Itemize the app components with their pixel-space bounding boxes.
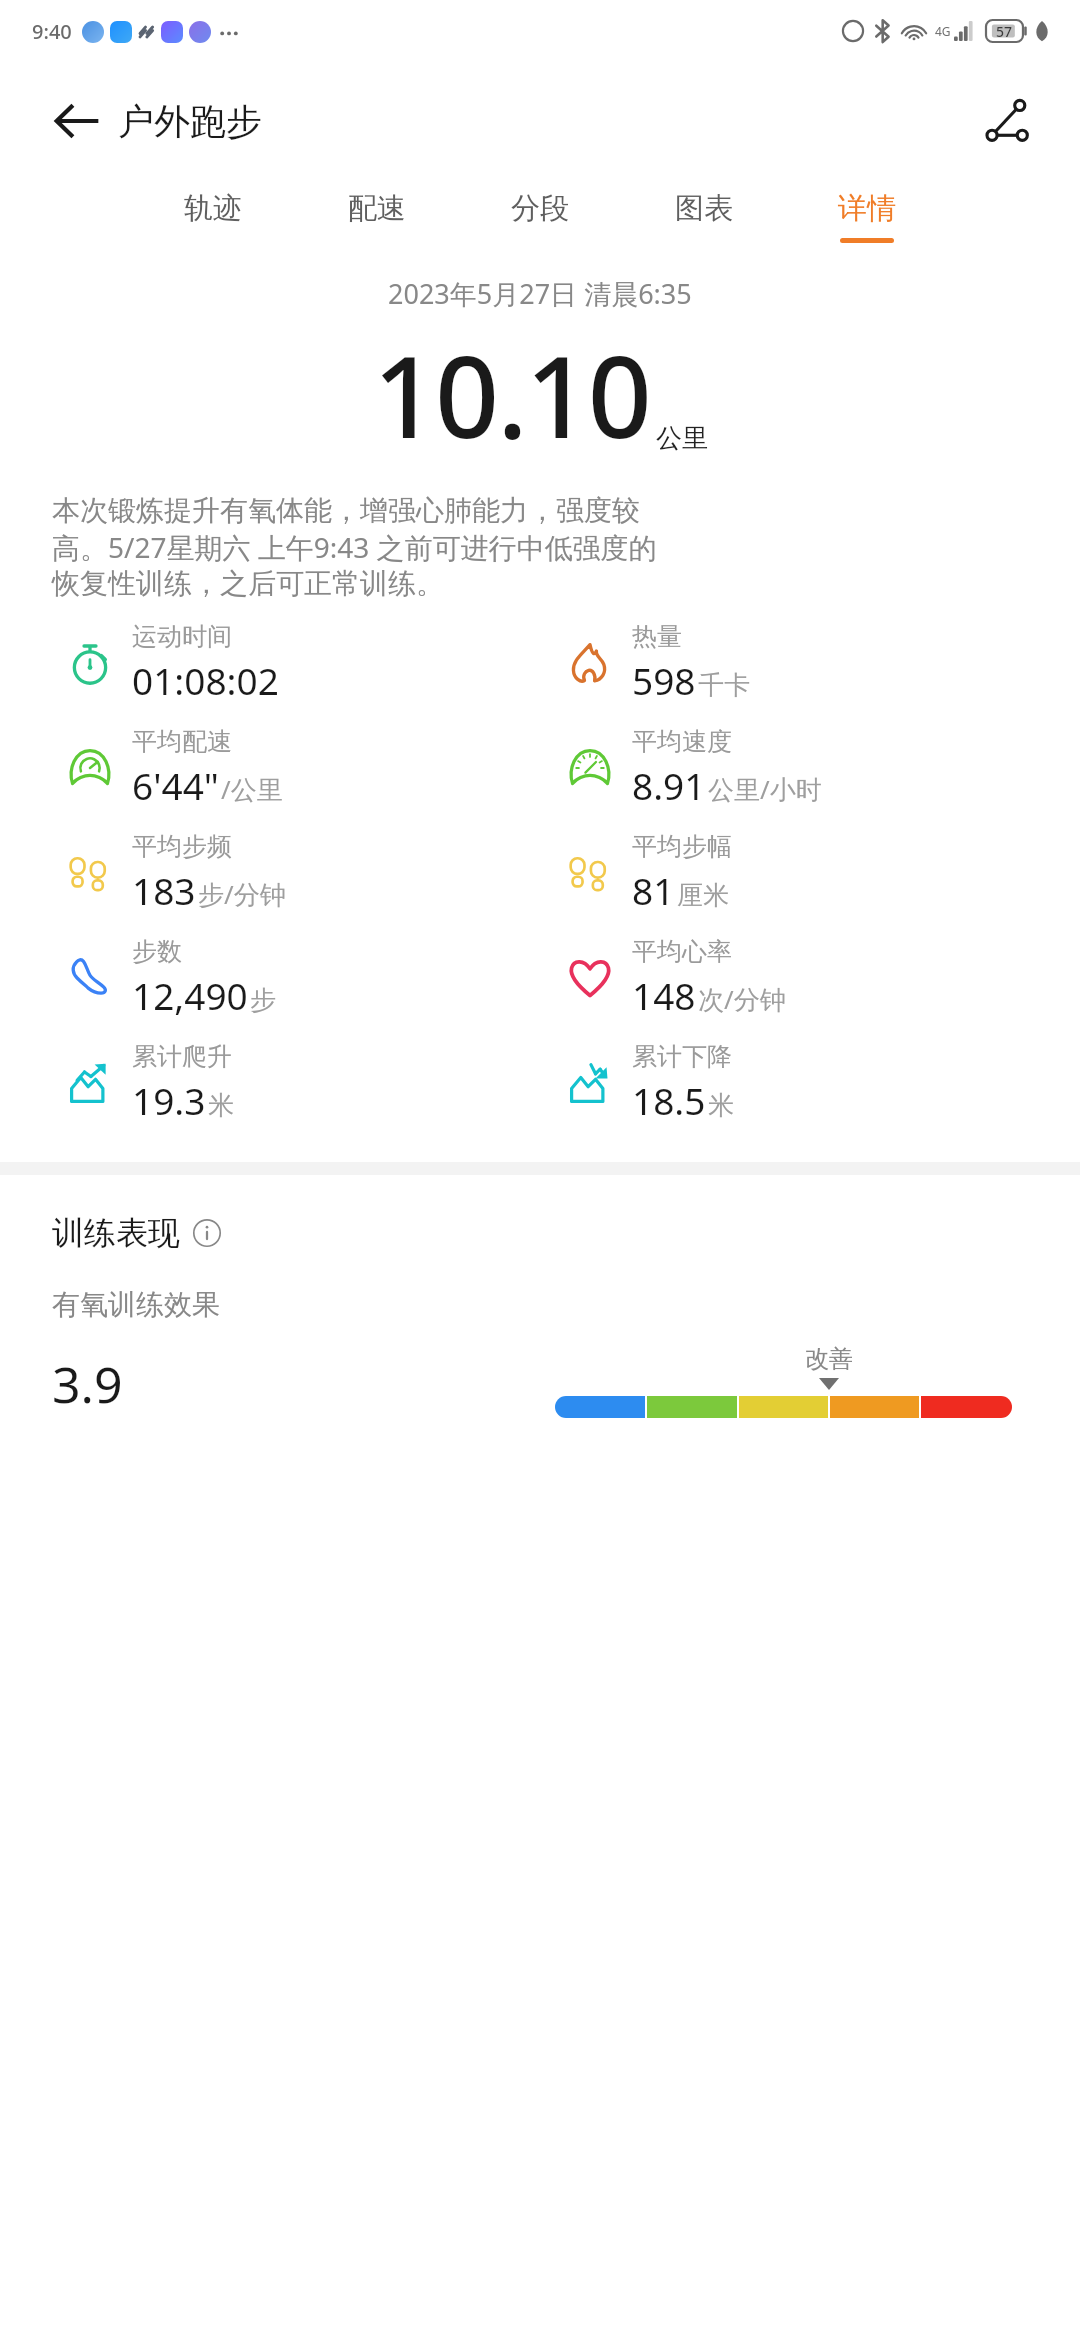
staticText: 6'44" (132, 760, 219, 810)
staticText: 平均配速 (132, 726, 232, 757)
staticText: 次/分钟 (698, 981, 786, 1017)
staticText: 平均步频 (132, 831, 232, 862)
staticText: 本次锻炼提升有氧体能，增强心肺能力，强度较 (52, 493, 640, 528)
staticText: 恢复性训练，之后可正常训练。 (52, 566, 444, 601)
staticText: 米 (708, 1089, 734, 1122)
staticText: 8.91 (632, 760, 706, 810)
button[interactable]: 运动时间 (62, 621, 540, 705)
staticText: 598 (632, 655, 696, 705)
staticText: 平均步幅 (632, 831, 732, 862)
staticText: 81 (632, 865, 675, 915)
staticText: 步/分钟 (198, 876, 286, 912)
staticText: 热量 (632, 621, 682, 652)
staticText: 57 (996, 22, 1013, 41)
button[interactable]: 轨迹 (180, 180, 246, 253)
staticText: 训练表现 (52, 1213, 180, 1253)
staticText: 图表 (675, 190, 733, 227)
button[interactable]: 平均步频 (62, 831, 540, 915)
button[interactable]: 热量 (562, 621, 1080, 705)
button[interactable]: 分段 (507, 180, 573, 253)
staticText: 高。5/27星期六 上午9:43 之前可进行中低强度的 (52, 528, 657, 566)
staticText: 配速 (348, 190, 406, 227)
staticText: 10.10 (373, 318, 650, 471)
button[interactable]: 平均步幅 (562, 831, 1080, 915)
button[interactable]: 平均配速 (62, 726, 540, 810)
staticText: 有氧训练效果 (52, 1287, 220, 1322)
button[interactable]: 累计爬升 (62, 1041, 540, 1125)
staticText: 19.3 (132, 1075, 206, 1125)
staticText: 详情 (838, 190, 896, 227)
button[interactable]: 图表 (671, 180, 737, 253)
button[interactable]: 详情 (834, 180, 900, 253)
staticText: 轨迹 (184, 190, 242, 227)
button[interactable]: 分享 (980, 93, 1036, 149)
staticText: /公里 (221, 771, 283, 807)
staticText: 改善 (805, 1344, 853, 1374)
staticText: 183 (132, 865, 196, 915)
staticText: 3.9 (52, 1350, 123, 1418)
staticText: 12,490 (132, 970, 248, 1020)
staticText: 千卡 (698, 669, 750, 702)
staticText: 累计爬升 (132, 1041, 232, 1072)
staticText: 运动时间 (132, 621, 232, 652)
staticText: 2023年5月27日 清晨6:35 (388, 275, 692, 312)
staticText: 累计下降 (632, 1041, 732, 1072)
button[interactable]: 步数 (62, 936, 540, 1020)
staticText: 18.5 (632, 1075, 706, 1125)
staticText: 分段 (511, 190, 569, 227)
staticText: 01:08:02 (132, 655, 279, 705)
button[interactable]: 训练表现 (52, 1213, 222, 1253)
button[interactable]: 累计下降 (562, 1041, 1080, 1125)
staticText: 平均心率 (632, 936, 732, 967)
staticText: 步数 (132, 936, 182, 967)
other: 说明 (192, 1218, 222, 1248)
staticText: 步 (250, 984, 276, 1017)
staticText: 厘米 (677, 879, 729, 912)
staticText: 4G (935, 23, 951, 39)
staticText: 户外跑步 (118, 99, 262, 144)
button[interactable]: 配速 (344, 180, 410, 253)
staticText: 米 (208, 1089, 234, 1122)
staticText: 148 (632, 970, 696, 1020)
staticText: 平均速度 (632, 726, 732, 757)
staticText: 9:40 (32, 18, 72, 45)
staticText: 公里/小时 (708, 771, 822, 807)
button[interactable]: 返回 (48, 93, 104, 149)
button[interactable]: 平均速度 (562, 726, 1080, 810)
button[interactable]: 平均心率 (562, 936, 1080, 1020)
staticText: 公里 (656, 422, 708, 455)
